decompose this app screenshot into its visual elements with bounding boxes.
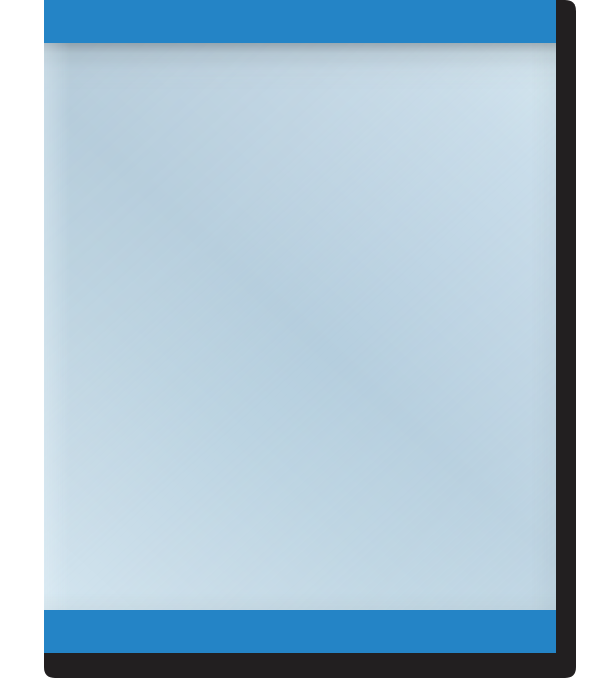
button[interactable]: Content area	[44, 43, 556, 610]
